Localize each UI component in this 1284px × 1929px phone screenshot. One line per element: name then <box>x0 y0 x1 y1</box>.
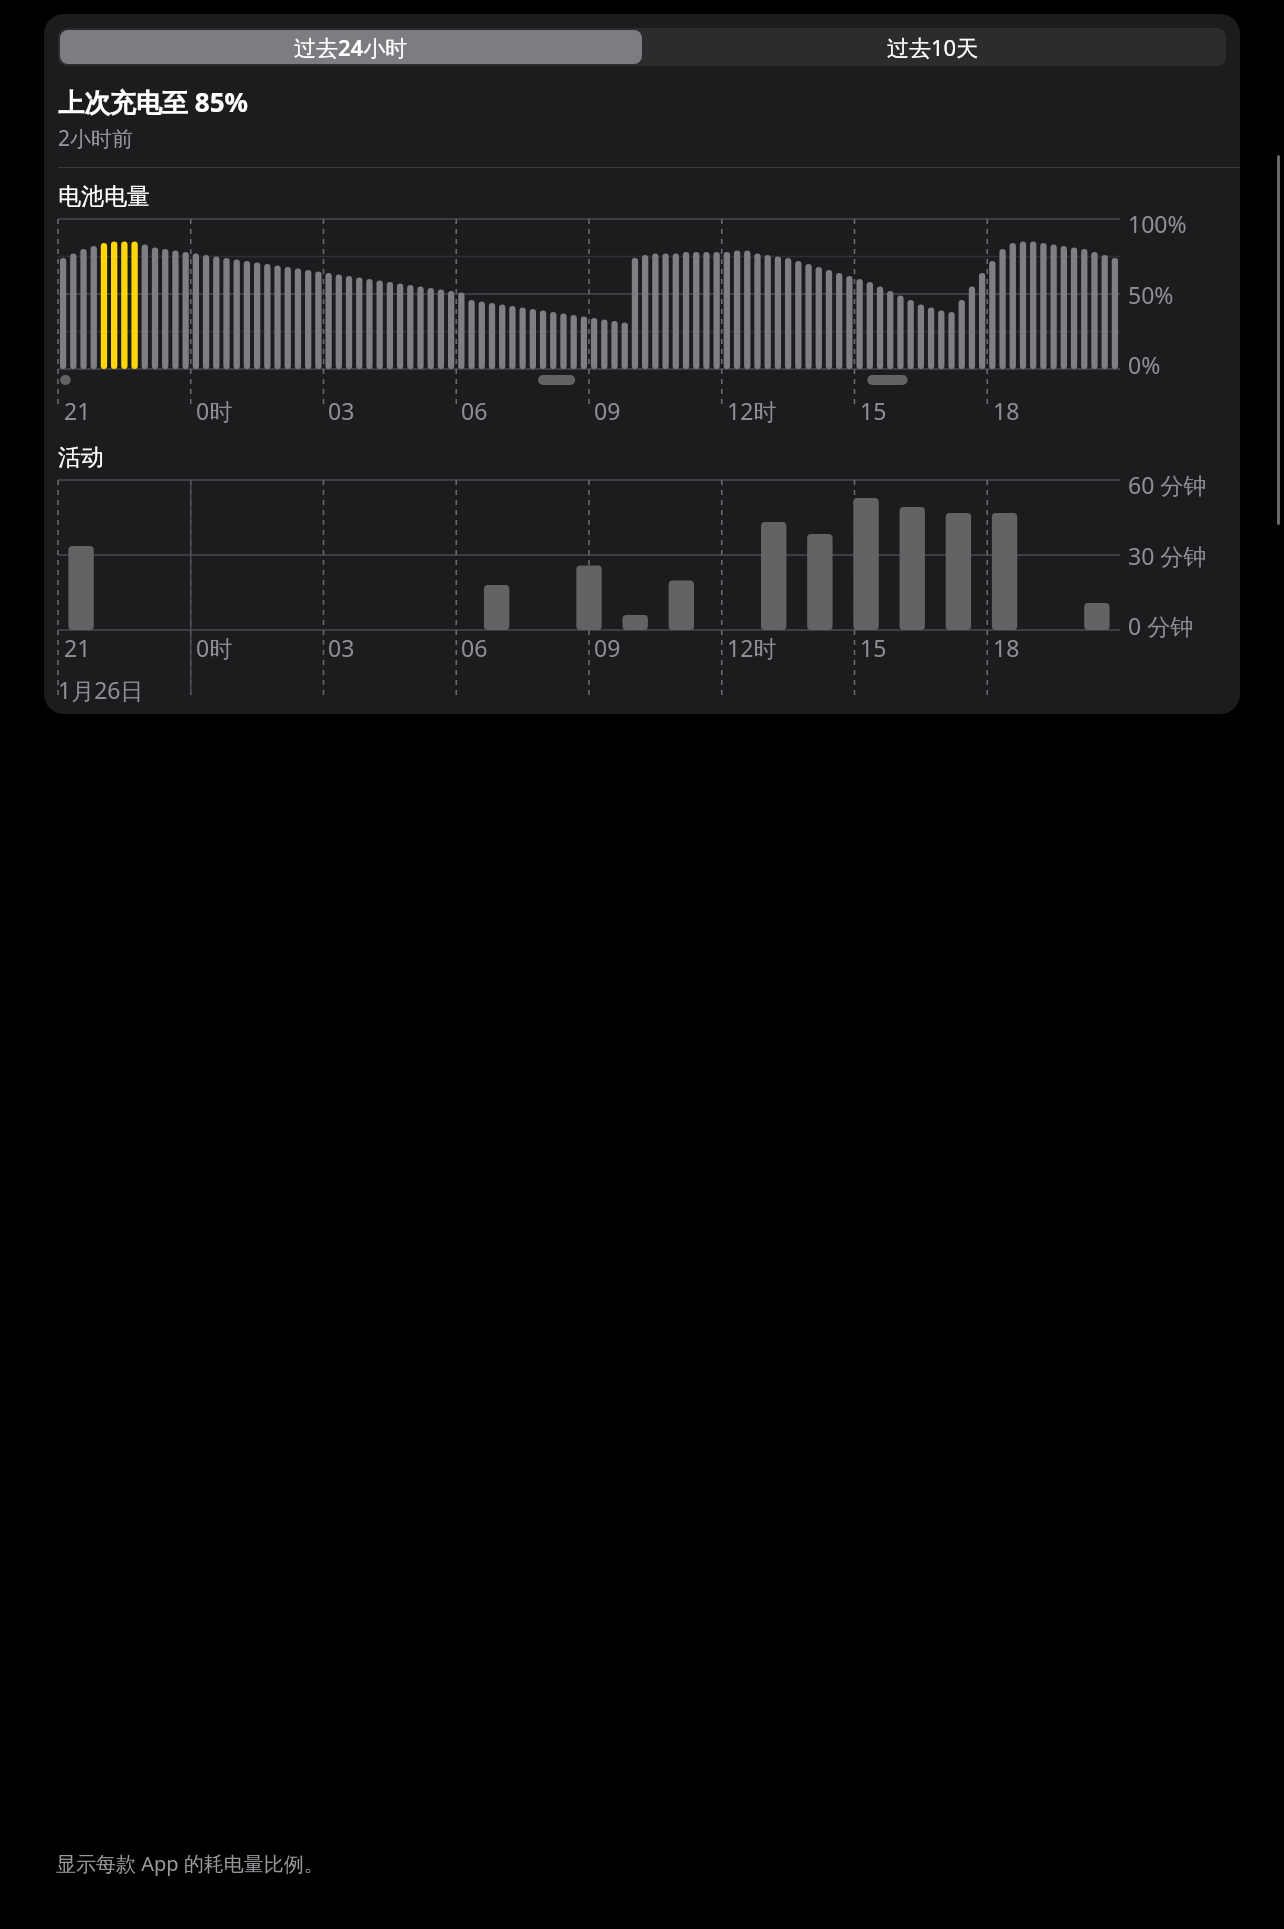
staticText: 09 <box>594 395 621 426</box>
staticText: 15 <box>860 632 887 663</box>
staticText: 0时 <box>196 395 233 426</box>
staticText: 电池电量 <box>58 182 150 211</box>
staticText: 1月26日 <box>58 674 144 705</box>
staticText: 21 <box>64 395 91 426</box>
button[interactable]: 过去10天 <box>642 30 1224 64</box>
staticText: 18 <box>993 632 1020 663</box>
staticText: 活动 <box>58 443 104 472</box>
staticText: 30 分钟 <box>1128 540 1207 571</box>
staticText: 12时 <box>727 395 777 426</box>
staticText: 2小时前 <box>58 124 134 153</box>
staticText: 18 <box>993 395 1020 426</box>
staticText: 09 <box>594 632 621 663</box>
staticText: 06 <box>461 395 488 426</box>
staticText: 100% <box>1128 208 1187 239</box>
staticText: 过去10天 <box>887 32 979 62</box>
staticText: 06 <box>461 632 488 663</box>
staticText: 显示每款 App 的耗电量比例。 <box>56 1850 324 1877</box>
staticText: 过去24小时 <box>294 32 408 62</box>
staticText: 12时 <box>727 632 777 663</box>
staticText: 03 <box>328 632 355 663</box>
staticText: 21 <box>64 632 91 663</box>
staticText: 50% <box>1128 279 1174 310</box>
staticText: 0时 <box>196 632 233 663</box>
button[interactable]: 过去24小时 <box>60 30 642 64</box>
staticText: 15 <box>860 395 887 426</box>
staticText: 0% <box>1128 349 1161 380</box>
staticText: 0 分钟 <box>1128 610 1194 641</box>
staticText: 03 <box>328 395 355 426</box>
staticText: 上次充电至 85% <box>58 84 248 120</box>
staticText: 60 分钟 <box>1128 469 1207 500</box>
